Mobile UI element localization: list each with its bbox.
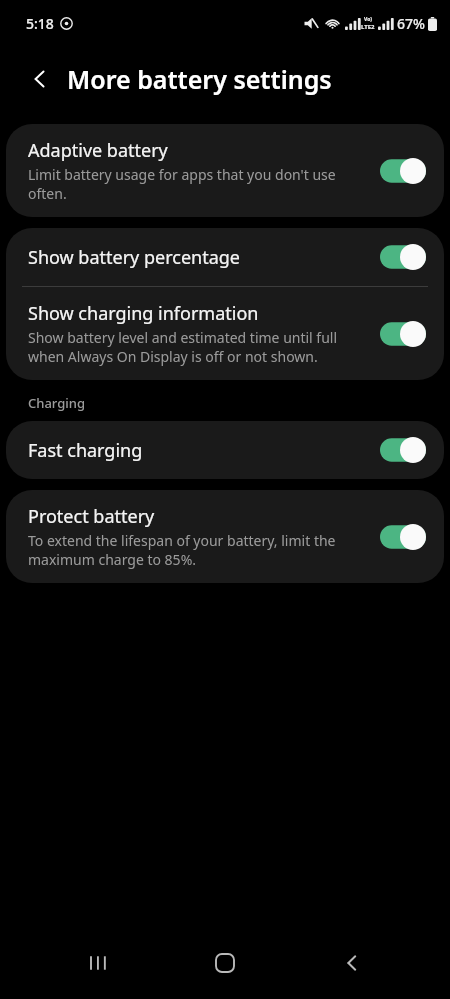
- button[interactable]: Toggle on: [378, 242, 428, 272]
- button[interactable]: Back: [324, 935, 380, 991]
- button[interactable]: Toggle on: [378, 435, 428, 465]
- button[interactable]: Fast charging: [6, 421, 444, 479]
- button[interactable]: Protect battery: [6, 490, 444, 583]
- staticText: Show charging information: [28, 301, 259, 326]
- button[interactable]: Adaptive battery: [6, 124, 444, 217]
- staticText: Adaptive battery: [28, 138, 168, 163]
- button[interactable]: Toggle on: [378, 319, 428, 349]
- staticText: To extend the lifespan of your battery, …: [28, 531, 366, 569]
- staticText: 67%: [397, 14, 425, 33]
- staticText: LTE2: [361, 23, 375, 31]
- staticText: Limit battery usage for apps that you do…: [28, 165, 366, 203]
- staticText: Show battery percentage: [28, 245, 241, 270]
- staticText: Show battery level and estimated time un…: [28, 328, 366, 366]
- button[interactable]: Toggle on: [378, 156, 428, 186]
- button[interactable]: Back: [16, 55, 64, 103]
- staticText: Vo): [364, 16, 372, 23]
- staticText: Charging: [28, 394, 85, 412]
- staticText: More battery settings: [67, 62, 332, 96]
- button[interactable]: Show battery percentage: [6, 228, 444, 286]
- staticText: Fast charging: [28, 438, 143, 463]
- button[interactable]: Toggle on: [378, 522, 428, 552]
- staticText: Protect battery: [28, 504, 155, 529]
- button[interactable]: Home: [197, 935, 253, 991]
- button[interactable]: Show charging information: [6, 287, 444, 380]
- button[interactable]: Recents: [71, 935, 127, 991]
- staticText: 5:18: [26, 14, 54, 33]
